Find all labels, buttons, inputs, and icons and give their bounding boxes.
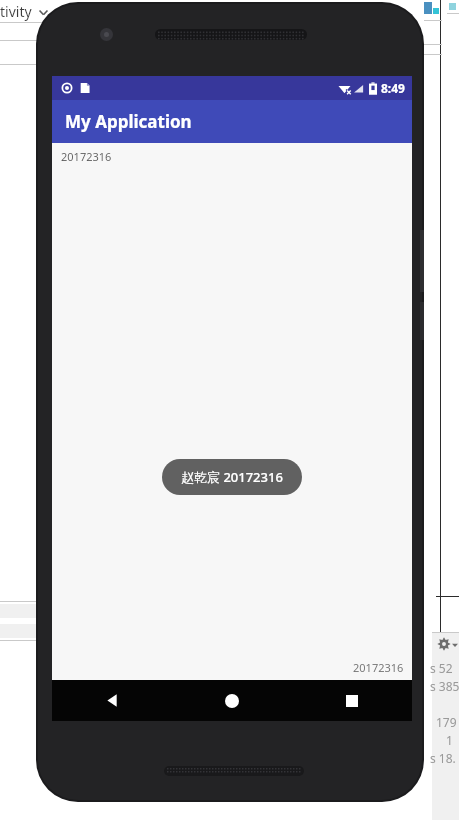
- staticText: My Application: [65, 110, 192, 133]
- button[interactable]: Home: [211, 680, 253, 721]
- staticText: s 52: [430, 660, 453, 676]
- staticText: s 18.: [430, 750, 456, 766]
- staticText: 1: [446, 732, 453, 748]
- staticText: 20172316: [61, 149, 112, 164]
- staticText: s 385: [430, 678, 459, 694]
- staticText: tivity: [0, 2, 32, 21]
- staticText: 179: [436, 714, 457, 730]
- staticText: 20172316: [353, 660, 404, 675]
- staticText: 赵乾宸 20172316: [181, 468, 283, 486]
- button[interactable]: Recent apps: [331, 680, 373, 721]
- staticText: 8:49: [381, 80, 405, 96]
- button[interactable]: 赵乾宸 20172316: [162, 459, 302, 495]
- button[interactable]: Back: [91, 680, 133, 721]
